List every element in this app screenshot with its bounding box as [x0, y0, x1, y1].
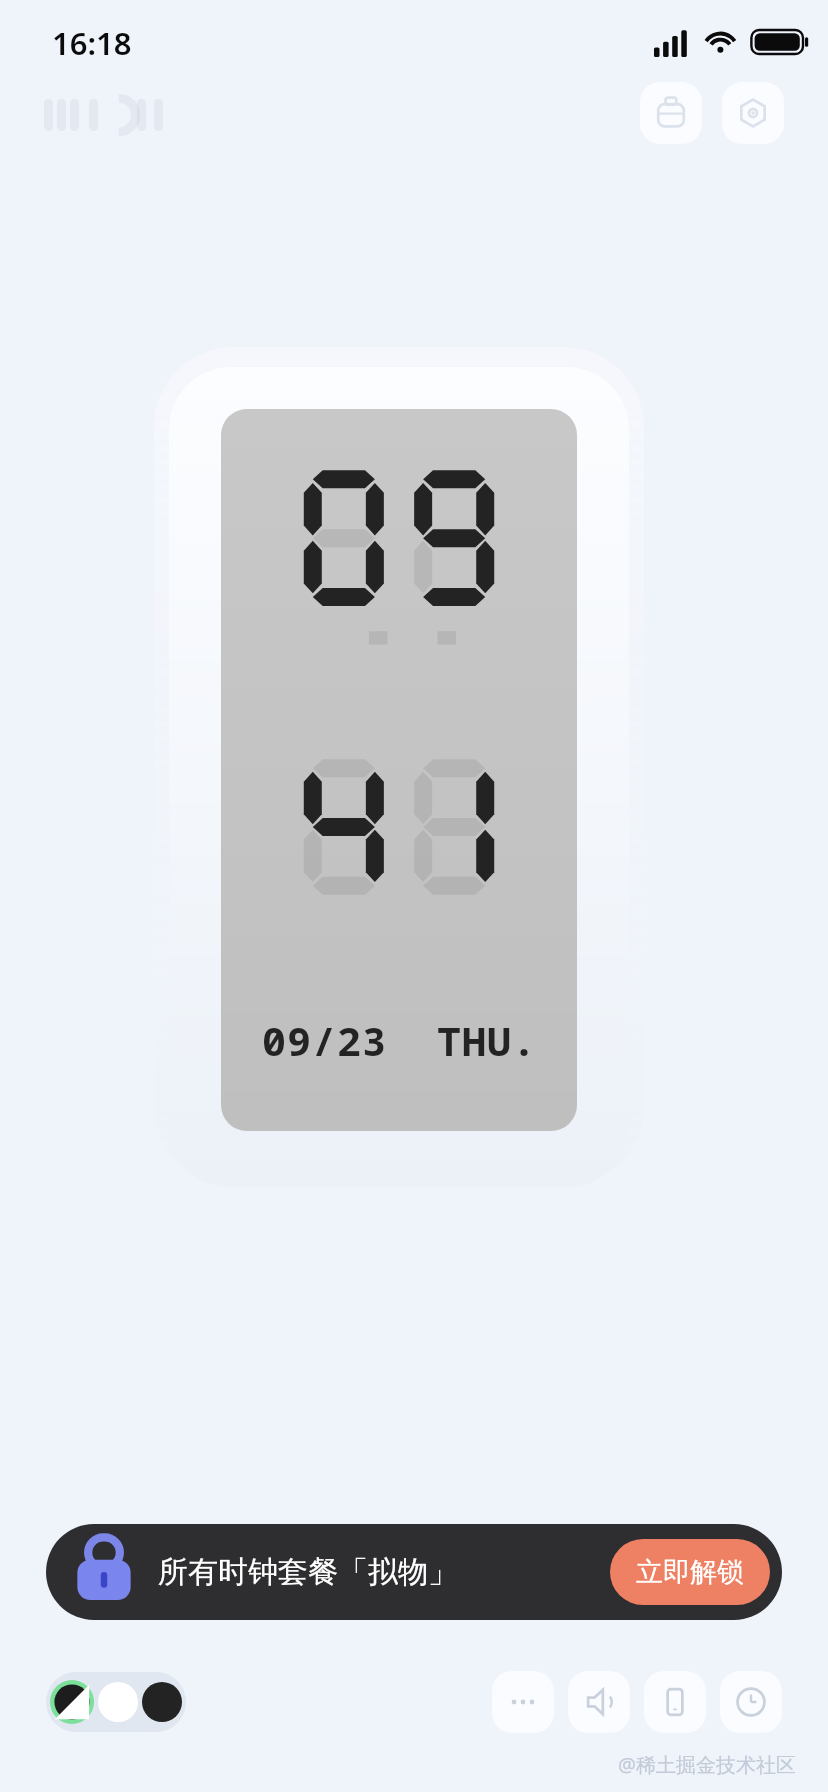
button[interactable]: 立即解锁	[610, 1539, 770, 1605]
staticText: 立即解锁	[636, 1555, 744, 1589]
staticText: 16:18	[52, 22, 132, 64]
button[interactable]: More	[492, 1671, 554, 1733]
button[interactable]: Clock styles	[720, 1671, 782, 1733]
staticText: @稀土掘金技术社区	[618, 1751, 796, 1778]
button[interactable]: Sound	[568, 1671, 630, 1733]
button[interactable]	[46, 1672, 186, 1732]
button[interactable]: Gallery	[640, 82, 702, 144]
button[interactable]: 所有时钟套餐「拟物」	[46, 1524, 782, 1620]
button[interactable]: Settings	[722, 82, 784, 144]
button[interactable]: Preview on phone	[644, 1671, 706, 1733]
staticText: 所有时钟套餐「拟物」	[158, 1553, 458, 1591]
staticText: 09/23 THU.	[262, 1013, 537, 1067]
button[interactable]: 09/23 THU.	[169, 367, 629, 1187]
